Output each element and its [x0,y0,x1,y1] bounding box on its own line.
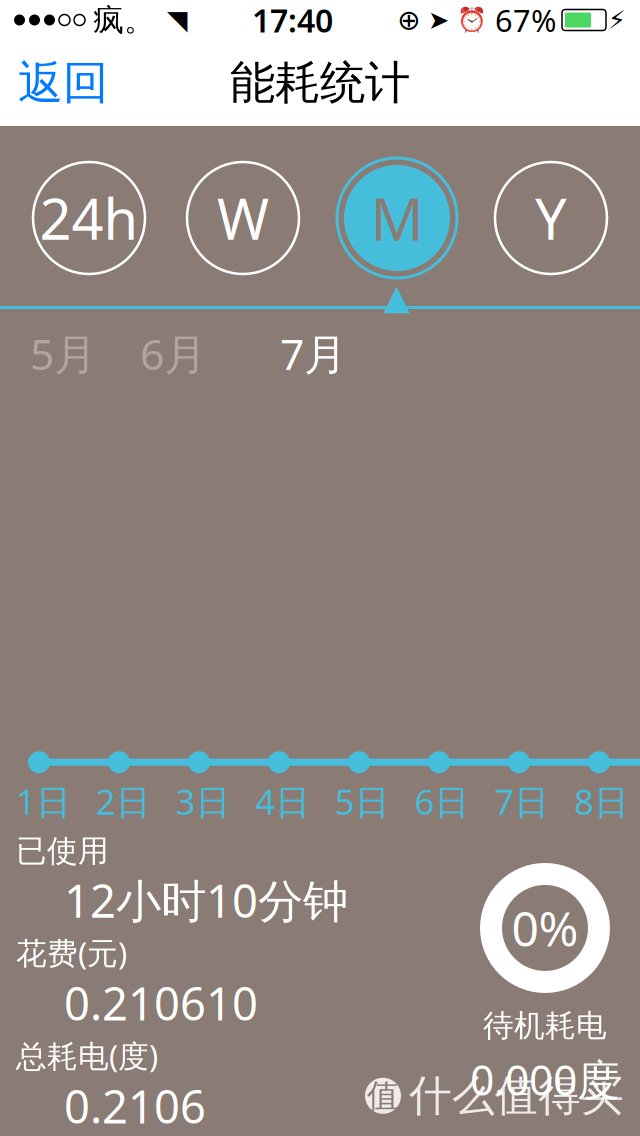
staticText: 7月 [280,325,347,382]
staticText: 67% [495,0,556,40]
button[interactable]: Y [484,148,618,288]
staticText: ◥ [167,5,188,35]
button[interactable]: M [330,148,464,288]
button[interactable]: 6月 [140,317,280,390]
staticText: 待机耗电 [483,1007,607,1045]
staticText: 花费(元) [16,932,127,973]
staticText: 返回 [18,55,108,111]
staticText: 0% [511,896,578,960]
staticText: Y [535,181,567,255]
staticText: 7日 [494,778,549,824]
staticText: W [217,181,269,255]
staticText: 已使用 [16,832,109,870]
button[interactable]: 7月 [280,317,420,390]
staticText: 什么值得买 [409,1070,624,1122]
staticText: 12小时10分钟 [64,870,348,930]
staticText: 4日 [255,778,310,824]
button[interactable]: 24h [22,148,156,288]
staticText: 0.000度 [470,1051,620,1107]
staticText: ⚡︎ [608,6,626,34]
staticText: ➤ [428,6,449,34]
staticText: 8日 [574,778,629,824]
button[interactable]: W [176,148,310,288]
staticText: 疯。 [93,1,155,39]
staticText: ⊕ [397,4,420,36]
staticText: ⏰ [457,6,487,34]
staticText: 0.210610 [64,973,258,1033]
staticText: 1日 [16,778,71,824]
button[interactable]: 返回 [0,43,126,123]
staticText: 17:40 [252,0,333,41]
staticText: 5月 [30,325,97,382]
staticText: 总耗电(度) [16,1035,158,1076]
staticText: 值 [367,1076,399,1115]
staticText: 6日 [415,778,470,824]
staticText: 能耗统计 [230,55,410,111]
staticText: 24h [39,181,138,255]
staticText: M [370,179,423,257]
button[interactable]: 5月 [30,317,140,390]
staticText: 2日 [96,778,151,824]
staticText: ▲ [383,277,410,317]
staticText: 0.2106 [64,1076,206,1136]
staticText: 6月 [140,325,207,382]
staticText: 3日 [175,778,230,824]
staticText: 5日 [335,778,390,824]
